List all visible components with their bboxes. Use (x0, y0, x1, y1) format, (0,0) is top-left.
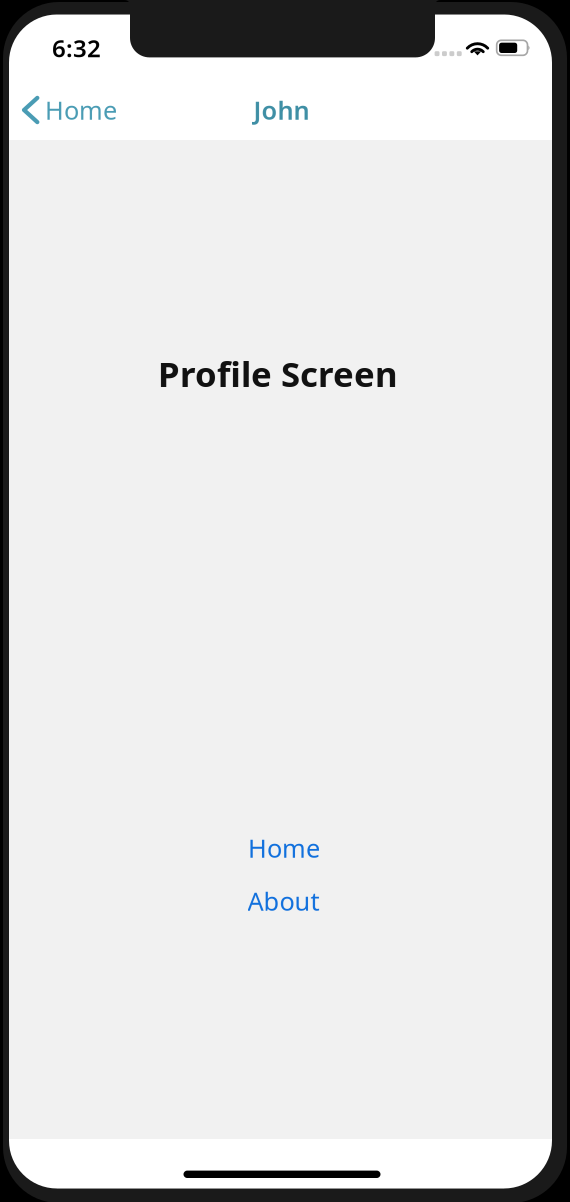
staticText: John (253, 93, 309, 127)
staticText: About (247, 884, 319, 918)
staticText: 6:32 (52, 32, 101, 64)
staticText: Home (45, 93, 117, 127)
button[interactable]: Home (9, 82, 131, 138)
button[interactable]: Home (12, 831, 555, 865)
staticText: Home (248, 831, 320, 865)
staticText: Profile Screen (158, 350, 398, 396)
button[interactable]: About (12, 884, 555, 918)
